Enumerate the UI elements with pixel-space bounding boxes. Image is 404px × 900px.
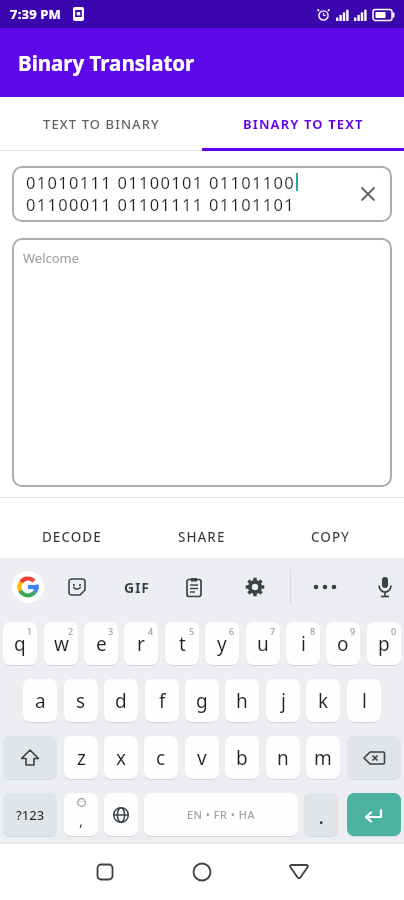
- button[interactable]: d: [104, 679, 138, 722]
- button[interactable]: [244, 576, 266, 598]
- button[interactable]: [376, 575, 394, 599]
- button[interactable]: o: [326, 622, 360, 665]
- staticText: m: [314, 745, 332, 771]
- staticText: 6: [229, 625, 235, 637]
- staticText: 3: [108, 625, 114, 637]
- staticText: v: [197, 745, 207, 771]
- button[interactable]: [312, 577, 338, 597]
- staticText: 9: [350, 625, 356, 637]
- button[interactable]: [66, 576, 88, 598]
- button[interactable]: x: [104, 736, 138, 779]
- staticText: 0: [391, 625, 397, 637]
- staticText: d: [115, 688, 127, 714]
- staticText: ?123: [16, 806, 45, 824]
- staticText: k: [318, 688, 329, 714]
- staticText: j: [281, 688, 286, 714]
- button[interactable]: DECODE: [22, 518, 122, 556]
- button[interactable]: [347, 736, 401, 779]
- button[interactable]: n: [266, 736, 300, 779]
- button[interactable]: [3, 736, 57, 779]
- button[interactable]: h: [225, 679, 259, 722]
- staticText: y: [217, 631, 227, 657]
- staticText: b: [236, 745, 248, 771]
- staticText: g: [196, 688, 208, 714]
- staticText: x: [116, 745, 127, 771]
- staticText: 8: [310, 625, 316, 637]
- button[interactable]: m: [306, 736, 340, 779]
- button[interactable]: [81, 848, 129, 896]
- button[interactable]: r: [124, 622, 158, 665]
- staticText: 7: [270, 625, 276, 637]
- button[interactable]: [360, 186, 376, 202]
- button[interactable]: c: [144, 736, 178, 779]
- button[interactable]: i: [286, 622, 320, 665]
- button[interactable]: g: [185, 679, 219, 722]
- button[interactable]: ,: [64, 793, 98, 836]
- staticText: t: [179, 631, 186, 657]
- staticText: a: [35, 688, 46, 714]
- staticText: TEXT TO BINARY: [43, 115, 160, 133]
- button[interactable]: ?123: [3, 793, 57, 836]
- button[interactable]: [12, 571, 44, 603]
- staticText: DECODE: [42, 528, 102, 546]
- staticText: s: [76, 688, 86, 714]
- button[interactable]: l: [347, 679, 381, 722]
- button[interactable]: a: [23, 679, 57, 722]
- staticText: BINARY TO TEXT: [243, 115, 364, 133]
- staticText: w: [54, 631, 69, 657]
- button[interactable]: .: [304, 793, 338, 836]
- staticText: f: [159, 688, 166, 714]
- button[interactable]: TEXT TO BINARY: [0, 97, 202, 151]
- button[interactable]: [275, 848, 323, 896]
- staticText: GIF: [124, 578, 150, 597]
- button[interactable]: v: [185, 736, 219, 779]
- staticText: 7:39 PM: [10, 5, 62, 23]
- staticText: .: [319, 807, 324, 829]
- button[interactable]: [104, 793, 138, 836]
- button[interactable]: [347, 793, 401, 836]
- button[interactable]: b: [225, 736, 259, 779]
- staticText: COPY: [311, 528, 351, 546]
- staticText: Binary Translator: [18, 49, 195, 77]
- staticText: u: [257, 631, 269, 657]
- staticText: l: [362, 688, 367, 714]
- staticText: SHARE: [178, 528, 226, 546]
- staticText: 4: [148, 625, 154, 637]
- staticText: r: [137, 631, 145, 657]
- button[interactable]: p: [367, 622, 401, 665]
- staticText: c: [156, 745, 166, 771]
- button[interactable]: z: [64, 736, 98, 779]
- staticText: 2: [68, 625, 74, 637]
- button[interactable]: EN • FR • HA: [144, 793, 298, 836]
- staticText: p: [378, 631, 390, 657]
- staticText: ,: [79, 810, 84, 830]
- staticText: z: [77, 745, 86, 771]
- staticText: n: [277, 745, 289, 771]
- staticText: o: [337, 631, 349, 657]
- button[interactable]: q: [3, 622, 37, 665]
- button[interactable]: j: [266, 679, 300, 722]
- staticText: Welcome: [23, 249, 80, 267]
- button[interactable]: [184, 577, 204, 597]
- button[interactable]: w: [44, 622, 78, 665]
- staticText: EN • FR • HA: [187, 807, 255, 822]
- button[interactable]: k: [306, 679, 340, 722]
- staticText: i: [301, 631, 306, 657]
- button[interactable]: [178, 848, 226, 896]
- button[interactable]: SHARE: [152, 518, 252, 556]
- staticText: 01100011 01101111 01101101: [26, 193, 295, 215]
- staticText: e: [96, 631, 107, 657]
- button[interactable]: y: [205, 622, 239, 665]
- button[interactable]: COPY: [281, 518, 381, 556]
- button[interactable]: BINARY TO TEXT: [202, 97, 404, 151]
- staticText: h: [236, 688, 248, 714]
- staticText: 1: [27, 625, 33, 637]
- button[interactable]: s: [64, 679, 98, 722]
- staticText: q: [14, 631, 26, 657]
- button[interactable]: t: [165, 622, 199, 665]
- button[interactable]: u: [246, 622, 280, 665]
- staticText: 01010111 01100101 01101100: [26, 171, 295, 193]
- staticText: 5: [189, 625, 195, 637]
- button[interactable]: f: [145, 679, 179, 722]
- button[interactable]: e: [84, 622, 118, 665]
